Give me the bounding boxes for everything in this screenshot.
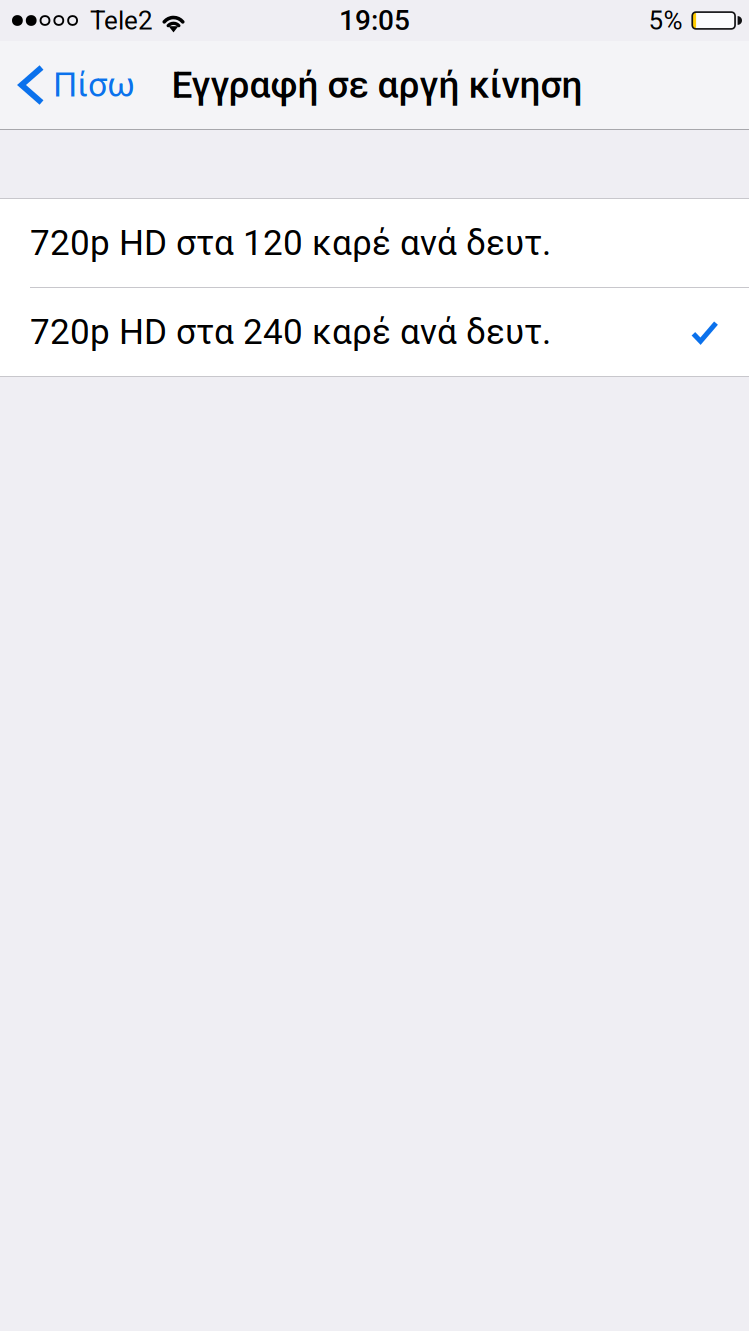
staticText: 19:05 — [339, 4, 410, 37]
staticText: 5% — [648, 5, 682, 36]
staticText: Tele2 — [90, 5, 153, 36]
button[interactable]: Πίσω — [0, 41, 149, 129]
button[interactable]: 720p HD στα 240 καρέ ανά δευτ. — [0, 288, 749, 376]
button[interactable]: 720p HD στα 120 καρέ ανά δευτ. — [0, 199, 749, 287]
staticText: 720p HD στα 240 καρέ ανά δευτ. — [30, 311, 551, 353]
staticText: Πίσω — [53, 65, 135, 105]
staticText: Εγγραφή σε αργή κίνηση — [171, 63, 582, 107]
staticText: 720p HD στα 120 καρέ ανά δευτ. — [30, 222, 551, 264]
